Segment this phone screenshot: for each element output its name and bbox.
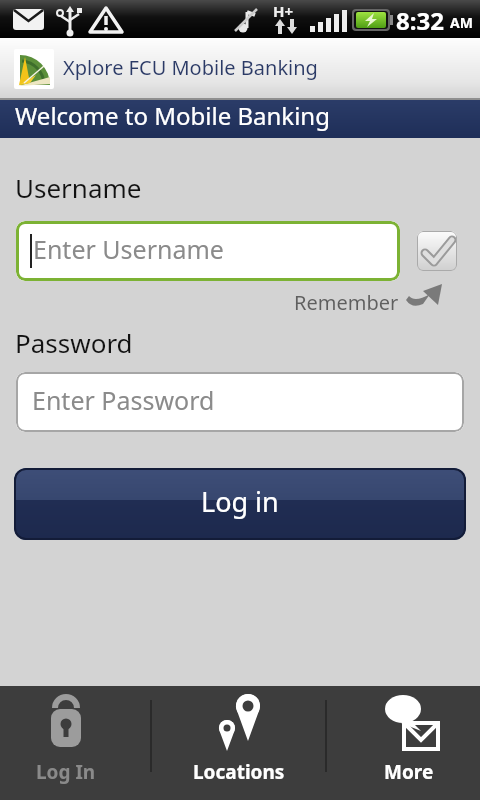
button[interactable]: Log In — [0, 686, 141, 800]
button[interactable]: More — [332, 686, 480, 800]
staticText: Xplore FCU Mobile Banking — [63, 54, 318, 81]
staticText: Log in — [201, 483, 279, 520]
staticText: Log In — [36, 759, 96, 785]
staticText: Enter Username — [33, 232, 224, 266]
staticText: H+ — [273, 1, 294, 21]
button[interactable]: Enter Username — [16, 221, 400, 281]
staticText: More — [384, 759, 434, 785]
staticText: 8:32 — [396, 4, 444, 37]
button[interactable]: Enter Password — [16, 372, 464, 432]
staticText: Password — [15, 325, 133, 360]
staticText: AM — [450, 13, 473, 32]
button[interactable]: Log in — [14, 468, 466, 540]
staticText: Welcome to Mobile Banking — [15, 99, 330, 132]
staticText: Username — [15, 170, 142, 205]
staticText: Locations — [193, 759, 285, 785]
button[interactable] — [417, 231, 457, 271]
staticText: Remember — [294, 289, 399, 316]
button[interactable]: Locations — [152, 686, 325, 800]
staticText: Enter Password — [32, 383, 215, 417]
